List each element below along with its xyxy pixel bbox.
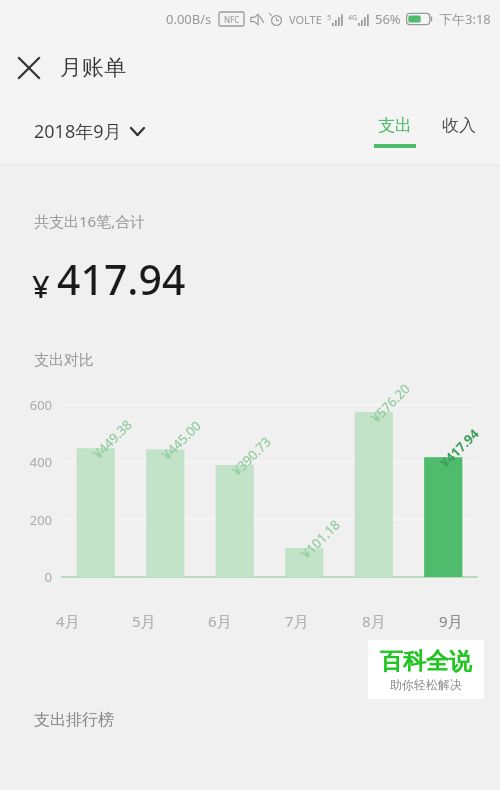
staticText: 417.94 [57, 251, 186, 307]
staticText: 9月 [439, 611, 463, 631]
staticText: 5 [327, 13, 332, 23]
staticText: 600 [0, 396, 52, 414]
staticText: 2018年9月 [34, 119, 122, 144]
staticText: 0.00B/s [166, 10, 212, 28]
staticText: VOLTE [289, 12, 322, 27]
staticText: ¥ [32, 265, 50, 307]
staticText: 助你轻松解决 [390, 677, 462, 692]
button[interactable]: Close [6, 45, 52, 91]
staticText: 6月 [208, 611, 232, 631]
staticText: ¥390.73 [228, 432, 275, 480]
button[interactable]: 支出 [368, 115, 422, 148]
staticText: 共支出16笔,合计 [34, 211, 146, 231]
staticText: 0 [0, 568, 52, 586]
staticText: 月账单 [60, 54, 126, 82]
staticText: NFC [224, 14, 240, 25]
staticText: 4G [348, 13, 358, 23]
staticText: ¥445.00 [158, 416, 205, 464]
staticText: 5月 [132, 611, 156, 631]
staticText: 8月 [362, 611, 386, 631]
staticText: ¥449.38 [89, 415, 136, 463]
staticText: ¥101.18 [297, 515, 344, 563]
staticText: 百科全说 [380, 647, 472, 676]
staticText: 56% [375, 10, 401, 28]
staticText: 支出对比 [34, 351, 94, 370]
staticText: 4月 [56, 611, 80, 631]
button[interactable]: 收入 [436, 115, 482, 136]
button[interactable]: 2018年9月 [26, 111, 152, 152]
staticText: 200 [0, 511, 52, 529]
staticText: 7月 [285, 611, 309, 631]
staticText: 支出 [378, 115, 412, 136]
staticText: ¥576.20 [367, 379, 414, 427]
staticText: 400 [0, 453, 52, 471]
staticText: 收入 [442, 115, 476, 136]
staticText: 支出排行榜 [34, 710, 114, 730]
staticText: ¥417.94 [436, 424, 483, 472]
staticText: 下午3:18 [439, 10, 491, 28]
